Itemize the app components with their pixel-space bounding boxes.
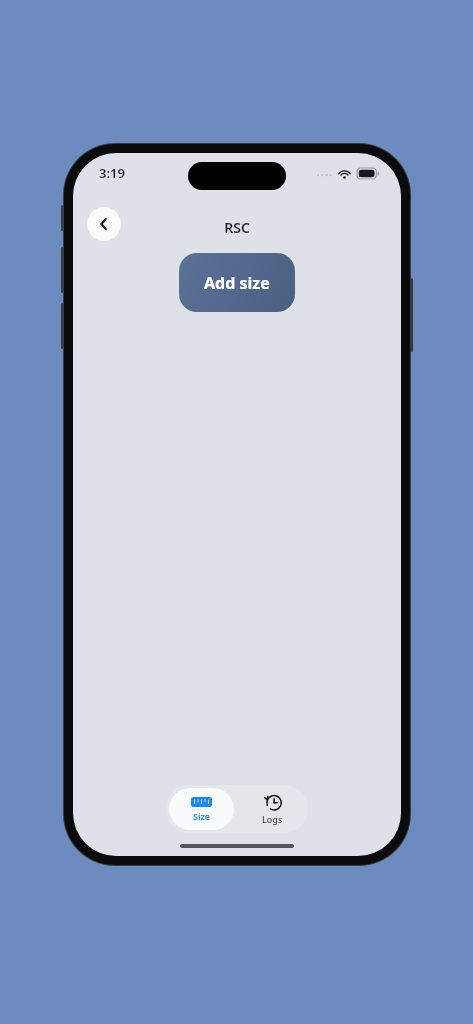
staticText: Size (193, 810, 211, 822)
button[interactable]: Back (87, 207, 121, 241)
button[interactable]: Logs (237, 785, 308, 833)
staticText: Add size (204, 272, 270, 294)
staticText: 3:19 (99, 164, 125, 182)
staticText: Logs (262, 813, 283, 825)
button[interactable]: Size (169, 788, 234, 830)
button[interactable]: Add size (179, 253, 295, 312)
staticText: RSC (224, 218, 250, 237)
